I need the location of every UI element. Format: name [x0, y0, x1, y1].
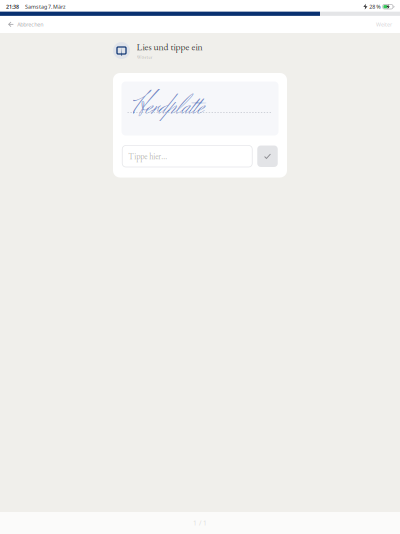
staticText: 21:38 — [6, 3, 19, 10]
staticText: Samstag 7. März — [25, 3, 66, 10]
staticText: Lies und tippe ein — [136, 40, 202, 53]
staticText: Herdplatte — [132, 88, 203, 127]
staticText: Abbrechen — [17, 21, 43, 28]
button[interactable]: Antwort bestätigen — [257, 145, 278, 167]
staticText: 1 / 1 — [193, 519, 207, 527]
staticText: Wörter — [136, 53, 152, 60]
staticText: 28 % — [369, 3, 380, 10]
button[interactable]: Abbrechen — [0, 18, 43, 31]
button[interactable]: Weiter — [376, 18, 400, 31]
staticText: Tippe hier... — [128, 151, 167, 162]
staticText: Weiter — [376, 21, 392, 28]
